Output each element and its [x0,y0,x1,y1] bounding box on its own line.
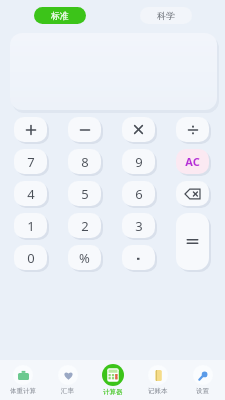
button[interactable] [122,245,155,270]
button[interactable]: 记账本 [135,360,180,400]
button[interactable]: AC [176,149,209,174]
staticText: 计算器 [103,388,123,396]
button[interactable]: Multiply [122,117,155,142]
staticText: AC [185,154,200,169]
button[interactable]: 1 [14,213,47,238]
button[interactable]: Divide [176,117,209,142]
staticText: 7 [27,153,35,171]
staticText: 8 [81,153,89,171]
button[interactable]: 2 [68,213,101,238]
button[interactable]: 7 [14,149,47,174]
button[interactable]: 科学 [140,7,192,24]
staticText: 科学 [157,10,175,21]
staticText: 3 [135,217,143,235]
button[interactable]: 4 [14,181,47,206]
button[interactable]: 9 [122,149,155,174]
button[interactable]: Backspace [176,181,209,206]
button[interactable]: Equals [176,213,209,270]
staticText: 4 [27,185,35,203]
button[interactable]: 计算器 [90,360,135,400]
button[interactable]: 3 [122,213,155,238]
staticText: 0 [27,249,35,267]
staticText: 设置 [196,387,209,395]
button[interactable]: 标准 [34,7,86,24]
button[interactable]: 设置 [180,360,225,400]
staticText: 6 [135,185,143,203]
button[interactable]: Plus [14,117,47,142]
button[interactable]: 8 [68,149,101,174]
staticText: 5 [81,185,89,203]
button[interactable]: 5 [68,181,101,206]
button[interactable]: 0 [14,245,47,270]
staticText: 1 [27,217,35,235]
button[interactable]: 体重计算 [0,360,45,400]
staticText: 汇率 [61,387,74,395]
staticText: % [79,249,90,267]
button[interactable]: Minus [68,117,101,142]
staticText: 体重计算 [10,387,36,395]
button[interactable]: % [68,245,101,270]
staticText: 记账本 [148,387,168,395]
button[interactable]: 汇率 [45,360,90,400]
staticText: 9 [135,153,143,171]
staticText: 标准 [51,10,69,21]
staticText: 2 [81,217,89,235]
button[interactable]: 6 [122,181,155,206]
